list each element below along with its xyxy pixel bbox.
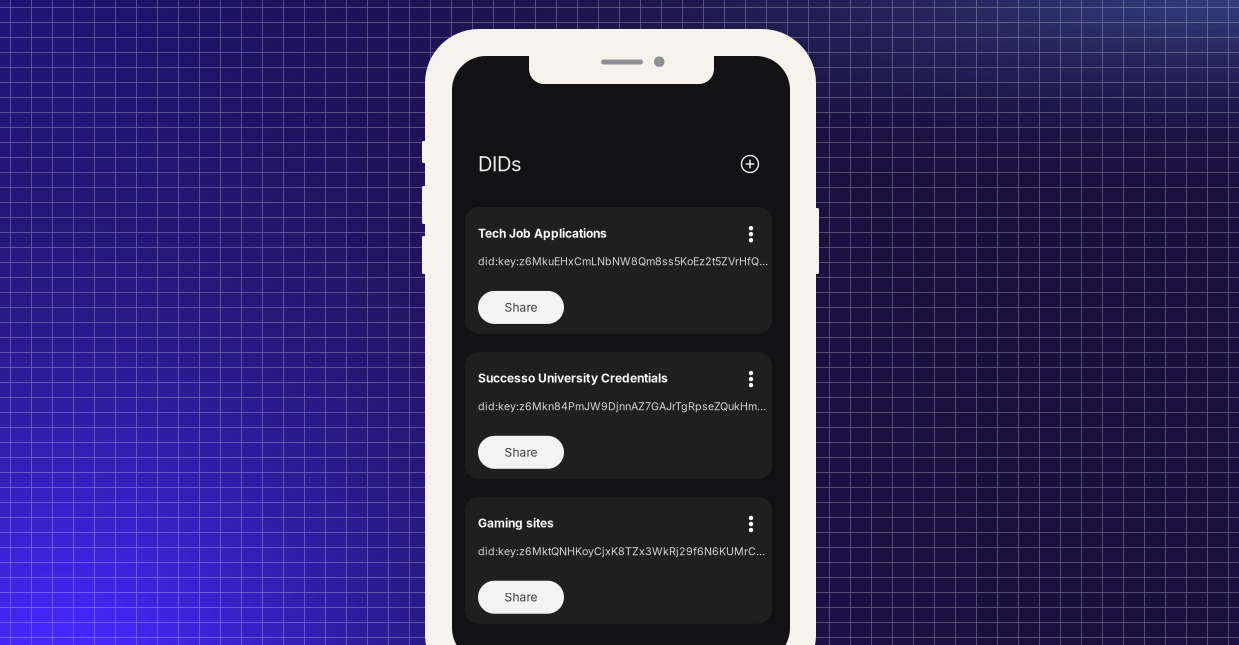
staticText: Gaming sites: [478, 516, 554, 530]
staticText: did:key:z6MkuEHxCmLNbNW8Qm8ss5KoEz2t5ZVr…: [478, 255, 768, 268]
staticText: Share: [504, 445, 537, 460]
staticText: did:key:z6MktQNHKoyCjxK8TZx3WkRj29f6N6KU…: [478, 545, 770, 558]
staticText: Tech Job Applications: [478, 226, 607, 240]
button[interactable]: More options: [743, 371, 759, 389]
button[interactable]: Share: [478, 291, 564, 324]
button[interactable]: Share: [478, 436, 564, 469]
staticText: DIDs: [478, 152, 521, 176]
button[interactable]: Add DID: [737, 151, 763, 177]
staticText: Successo University Credentials: [478, 371, 668, 385]
staticText: Share: [504, 590, 537, 604]
button[interactable]: More options: [743, 516, 759, 534]
button[interactable]: Share: [478, 581, 564, 614]
button[interactable]: More options: [743, 226, 759, 244]
staticText: did:key:z6Mkn84PmJW9DjnnAZ7GAJrTgRpseZQu…: [478, 400, 766, 413]
staticText: Share: [504, 300, 537, 315]
